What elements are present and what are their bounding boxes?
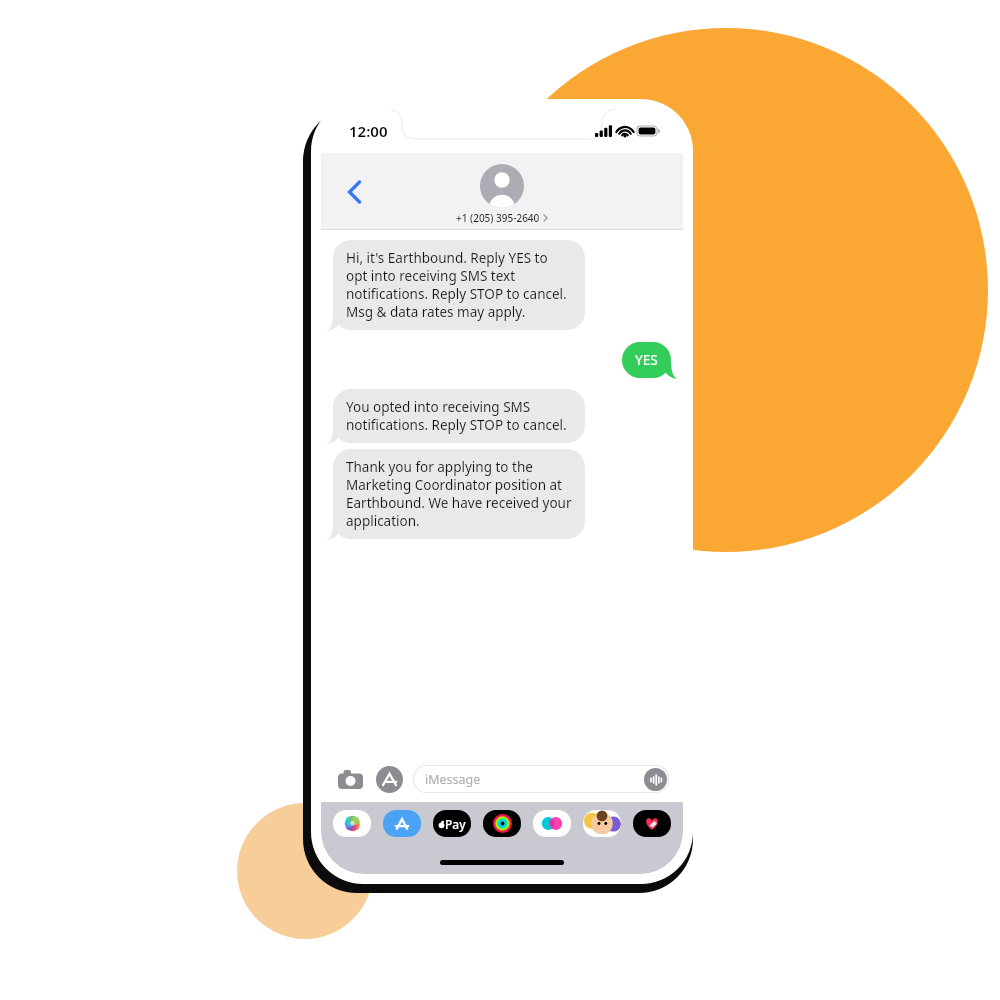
button[interactable]: Activity: [482, 808, 522, 838]
button[interactable]: iMessage: [413, 765, 669, 793]
staticText: You opted into receiving SMS notificatio…: [346, 398, 572, 434]
button[interactable]: App Store: [382, 808, 422, 838]
button[interactable]: Memoji: [582, 808, 622, 838]
button[interactable]: Apple Pay: [432, 808, 472, 838]
staticText: iMessage: [425, 771, 481, 788]
staticText: YES: [635, 351, 658, 369]
button[interactable]: App Store: [376, 766, 403, 793]
button[interactable]: Hi, it's Earthbound. Reply YES to opt in…: [333, 240, 585, 330]
staticText: Thank you for applying to the Marketing …: [346, 458, 572, 530]
button[interactable]: Audio message: [644, 768, 667, 791]
button[interactable]: You opted into receiving SMS notificatio…: [333, 389, 585, 443]
button[interactable]: Thank you for applying to the Marketing …: [333, 449, 585, 539]
button[interactable]: Digital Touch: [632, 808, 672, 838]
staticText: +1 (205) 395-2640: [456, 211, 540, 225]
staticText: Hi, it's Earthbound. Reply YES to opt in…: [346, 249, 572, 321]
button[interactable]: Photos: [332, 808, 372, 838]
staticText: Pay: [445, 816, 466, 832]
button[interactable]: Camera: [335, 764, 365, 794]
button[interactable]: YES: [622, 342, 671, 378]
staticText: 12:00: [349, 121, 388, 141]
button[interactable]: Images: [532, 808, 572, 838]
button[interactable]: +1 (205) 395-2640: [456, 164, 548, 225]
button[interactable]: Back: [335, 172, 375, 212]
